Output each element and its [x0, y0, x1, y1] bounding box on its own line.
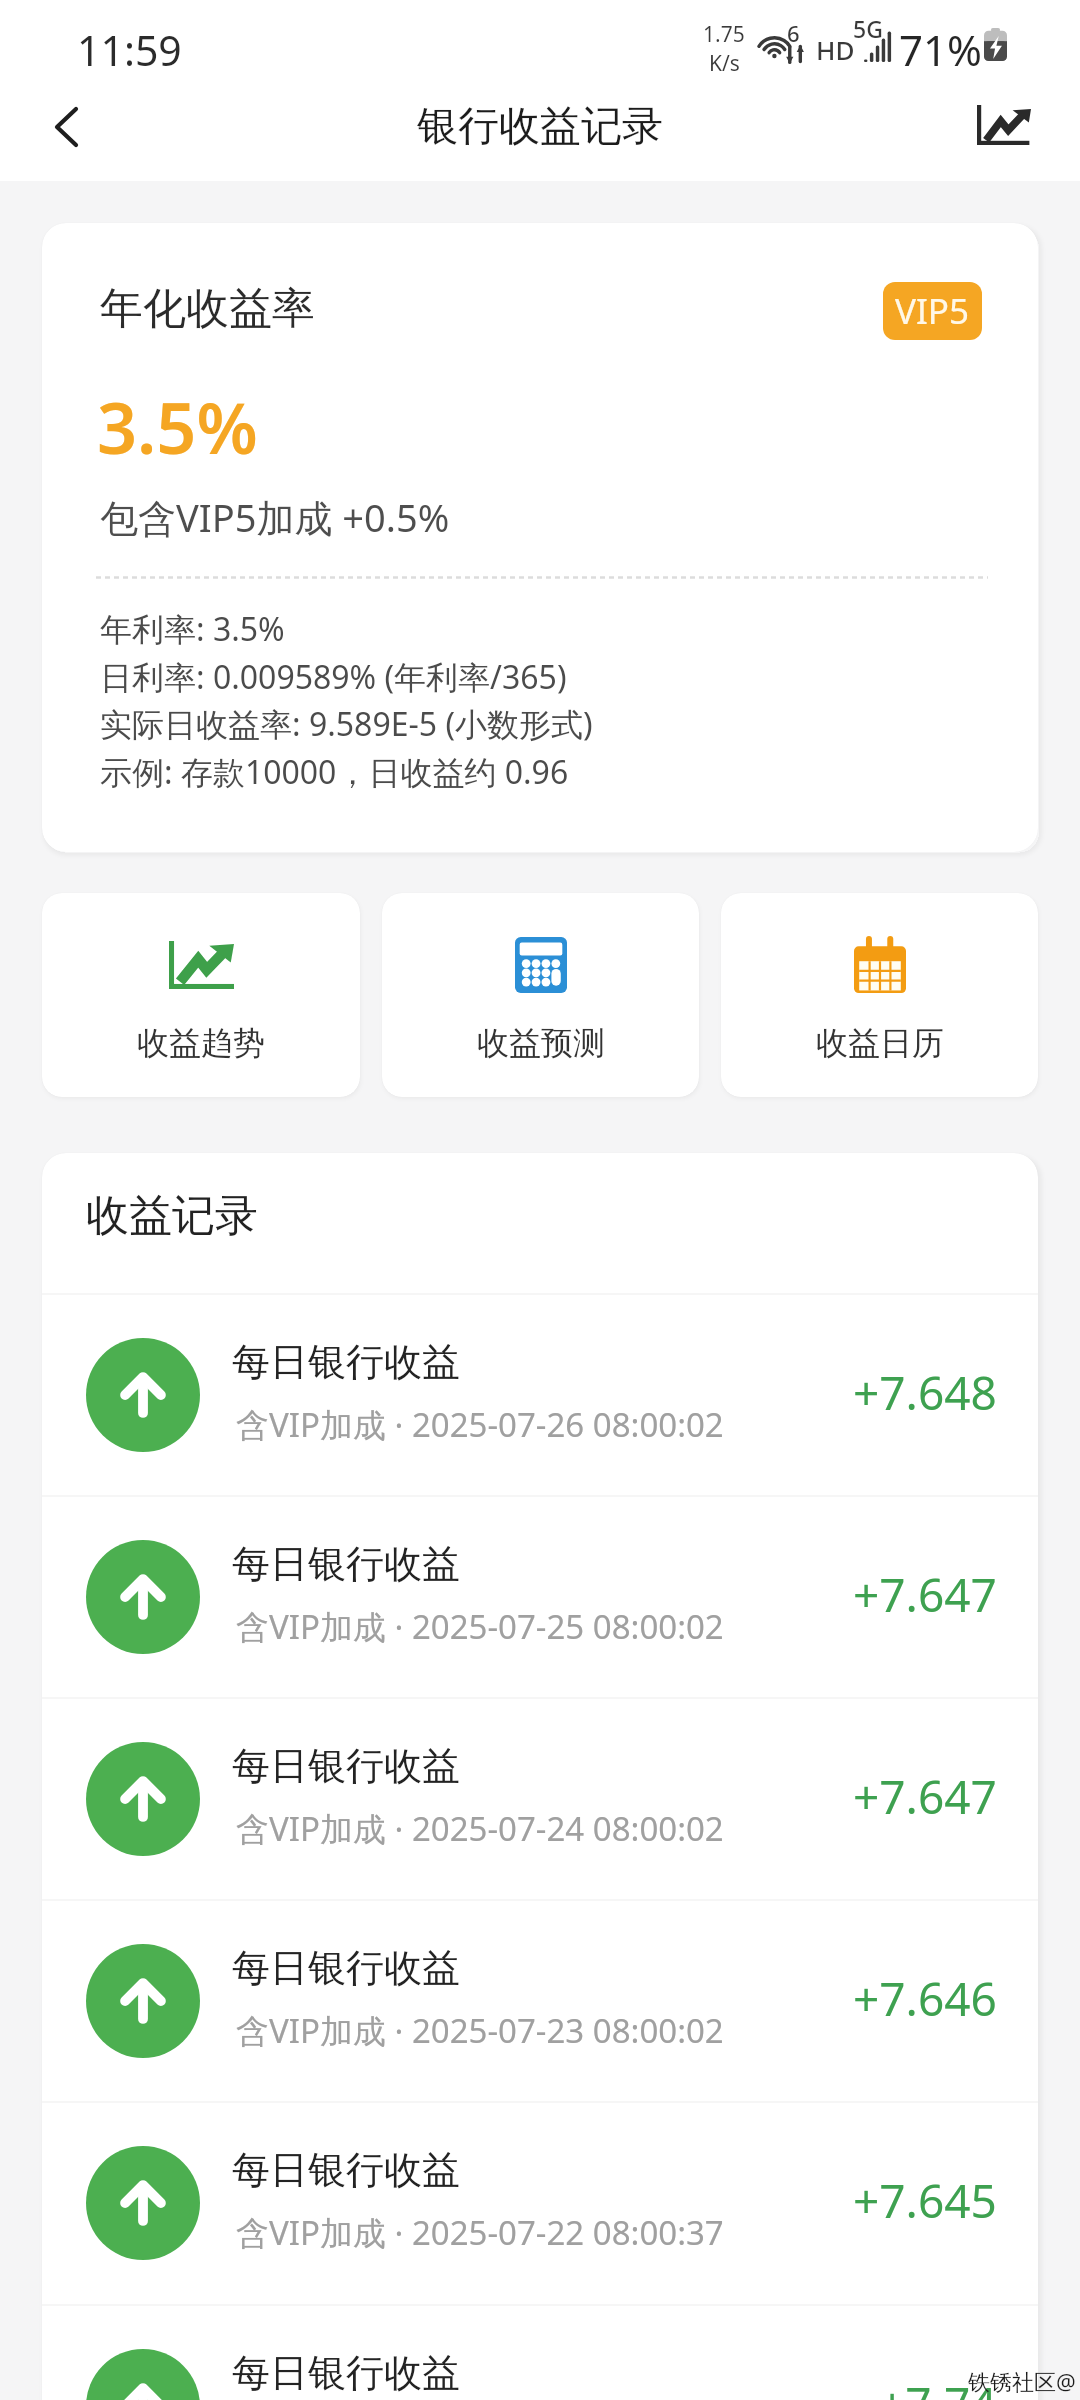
button[interactable]: 收益趋势 [42, 893, 360, 1097]
staticText: 收益趋势 [137, 1023, 265, 1063]
staticText: VIP5 [895, 287, 970, 335]
button[interactable]: 每日银行收益 [42, 1497, 1038, 1697]
staticText: +7.647 [853, 1765, 997, 1828]
staticText: 每日银行收益 [232, 2146, 460, 2194]
staticText: 含VIP加成 · 2025-07-22 08:00:37 [236, 2210, 724, 2255]
staticText: 3.5% [97, 379, 258, 474]
staticText: HD [816, 32, 855, 67]
staticText: 年利率: 3.5% [100, 607, 285, 651]
staticText: 每日银行收益 [232, 1944, 460, 1992]
staticText: +7.646 [853, 1967, 997, 2030]
staticText: 含VIP加成 · 2025-07-23 08:00:02 [236, 2008, 724, 2053]
button[interactable]: 每日银行收益 [42, 1699, 1038, 1899]
staticText: 包含VIP5加成 +0.5% [100, 491, 450, 543]
staticText: +7.74 [879, 2372, 997, 2400]
button[interactable]: 收益日历 [721, 893, 1038, 1097]
staticText: 收益日历 [816, 1023, 944, 1063]
staticText: 11:59 [77, 22, 182, 78]
staticText: 实际日收益率: 9.589E-5 (小数形式) [100, 702, 593, 746]
staticText: 含VIP加成 · 2025-07-26 08:00:02 [236, 1402, 724, 1447]
button[interactable]: 每日银行收益 [42, 2103, 1038, 2303]
staticText: 收益预测 [477, 1023, 605, 1063]
button[interactable]: 每日银行收益 [42, 2306, 1038, 2400]
staticText: 1.75 [703, 20, 745, 49]
button[interactable]: 每日银行收益 [42, 1901, 1038, 2101]
staticText: 每日银行收益 [232, 2349, 460, 2397]
staticText: 收益记录 [86, 1189, 258, 1243]
staticText: 71% [899, 21, 982, 78]
staticText: 每日银行收益 [232, 1742, 460, 1790]
staticText: 每日银行收益 [232, 1338, 460, 1386]
staticText: +7.647 [853, 1563, 997, 1626]
staticText: 日利率: 0.009589% (年利率/365) [100, 655, 567, 699]
staticText: +7.645 [853, 2169, 997, 2232]
staticText: 铁锈社区@ [968, 2366, 1076, 2396]
staticText: 6 [787, 18, 800, 48]
button[interactable]: VIP5 [883, 282, 982, 340]
button[interactable]: 收益图表 [950, 88, 1080, 181]
staticText: 示例: 存款10000，日收益约 0.96 [100, 750, 569, 794]
button[interactable]: 每日银行收益 [42, 1295, 1038, 1495]
staticText: 年化收益率 [100, 282, 315, 336]
staticText: K/s [709, 49, 740, 78]
staticText: 含VIP加成 · 2025-07-25 08:00:02 [236, 1604, 724, 1649]
staticText: +7.648 [853, 1361, 997, 1424]
staticText: 每日银行收益 [232, 1540, 460, 1588]
staticText: 银行收益记录 [417, 101, 663, 153]
staticText: 含VIP加成 · 2025-07-24 08:00:02 [236, 1806, 724, 1851]
button[interactable]: 收益预测 [382, 893, 699, 1097]
staticText: 5G [853, 13, 883, 44]
button[interactable]: 返回 [0, 88, 132, 181]
